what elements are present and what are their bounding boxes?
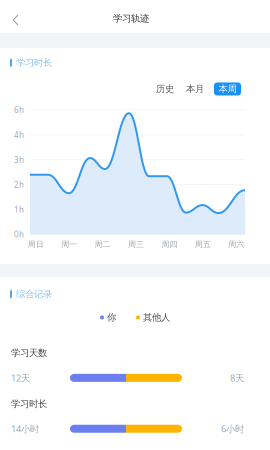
staticText: 周一 (61, 239, 77, 249)
staticText: 周四 (161, 239, 177, 249)
staticText: 3h (14, 154, 24, 165)
staticText: 2h (14, 179, 24, 190)
staticText: 周六 (228, 239, 244, 249)
staticText: 学习天数 (11, 347, 47, 359)
staticText: 周五 (195, 239, 211, 249)
staticText: 历史 (156, 83, 174, 95)
staticText: 你 (107, 312, 116, 323)
staticText: 周三 (128, 239, 144, 249)
staticText: 周二 (95, 239, 111, 249)
button[interactable]: 本月 (185, 82, 205, 95)
staticText: 8天 (230, 372, 244, 384)
staticText: 本月 (186, 83, 204, 95)
staticText: 本周 (218, 83, 236, 95)
button[interactable]: 本周 (214, 82, 241, 95)
staticText: 6小时 (221, 422, 244, 435)
staticText: 学习轨迹 (113, 13, 149, 24)
staticText: 4h (14, 130, 24, 140)
button[interactable]: Back (0, 0, 32, 33)
staticText: 其他人 (143, 312, 170, 323)
staticText: 周日 (28, 239, 44, 249)
button[interactable]: 历史 (155, 82, 175, 95)
staticText: 学习时长 (11, 398, 47, 410)
staticText: 12天 (11, 372, 30, 384)
staticText: 0h (14, 229, 24, 240)
staticText: 1h (14, 204, 24, 215)
staticText: 学习时长 (16, 57, 52, 68)
staticText: 14小时 (11, 422, 39, 435)
staticText: 6h (14, 105, 24, 115)
staticText: 综合记录 (16, 288, 52, 300)
